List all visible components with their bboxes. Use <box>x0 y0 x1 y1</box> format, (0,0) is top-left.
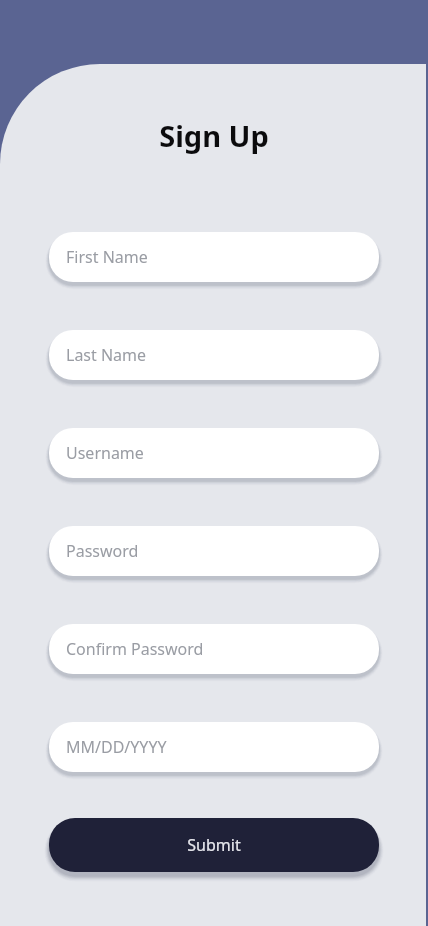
staticText: MM/DD/YYYY <box>66 736 167 758</box>
staticText: Submit <box>187 834 241 856</box>
staticText: Sign Up <box>159 116 269 154</box>
button[interactable]: Submit <box>49 818 379 872</box>
staticText: Last Name <box>66 344 147 366</box>
button[interactable]: First Name <box>49 232 379 282</box>
button[interactable]: MM/DD/YYYY <box>49 722 379 772</box>
staticText: First Name <box>66 246 148 268</box>
button[interactable]: Confirm Password <box>49 624 379 674</box>
staticText: Confirm Password <box>66 638 204 660</box>
button[interactable]: Username <box>49 428 379 478</box>
staticText: Password <box>66 540 139 562</box>
button[interactable]: Last Name <box>49 330 379 380</box>
button[interactable]: Password <box>49 526 379 576</box>
staticText: Username <box>66 442 144 464</box>
